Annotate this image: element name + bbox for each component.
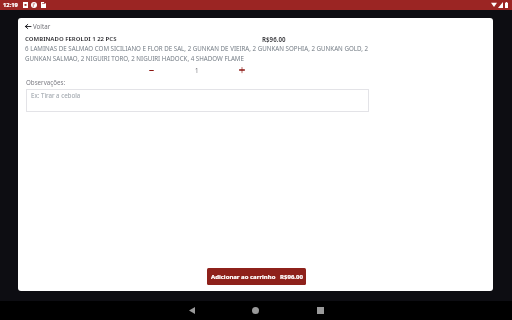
- staticText: Observações:: [26, 78, 66, 86]
- staticText: COMBINADO FEROLDI 1 22 PCS: [25, 35, 117, 43]
- button[interactable]: Back: [184, 303, 199, 318]
- button[interactable]: Adicionar ao carrinho R$96.00: [207, 268, 306, 285]
- button[interactable]: Voltar: [25, 22, 51, 30]
- staticText: Voltar: [33, 22, 51, 30]
- staticText: 6 LAMINAS DE SALMAO COM SICILIANO E FLOR…: [25, 44, 370, 63]
- staticText: 12:19: [3, 1, 18, 9]
- staticText: 1: [195, 66, 199, 74]
- staticText: Ex: Tirar a cebola: [31, 91, 81, 99]
- button[interactable]: Decrease quantity: [143, 62, 160, 79]
- staticText: R$96.00: [262, 35, 286, 43]
- button[interactable]: Recent apps: [313, 303, 328, 318]
- button[interactable]: Home: [248, 303, 263, 318]
- button[interactable]: Ex: Tirar a cebola: [26, 89, 369, 112]
- button[interactable]: Increase quantity: [233, 61, 251, 79]
- staticText: Adicionar ao carrinho R$96.00: [211, 273, 303, 281]
